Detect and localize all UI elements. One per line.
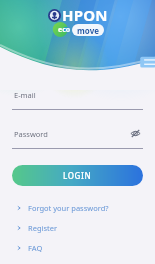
- staticText: E-mail: [14, 90, 36, 100]
- staticText: LOGIN: [63, 170, 92, 181]
- button[interactable]: Show password: [130, 128, 141, 139]
- staticText: FAQ: [28, 243, 43, 253]
- button[interactable]: FAQ: [12, 238, 143, 258]
- staticText: eco: [58, 25, 71, 35]
- button[interactable]: Forgot your password?: [12, 198, 143, 218]
- button[interactable]: LOGIN: [12, 165, 143, 186]
- button[interactable]: E-mail: [12, 88, 143, 110]
- button[interactable]: Register: [12, 218, 143, 238]
- staticText: HPON: [62, 5, 108, 25]
- staticText: move: [77, 25, 99, 36]
- button[interactable]: Password: [12, 127, 143, 149]
- staticText: Forgot your password?: [28, 203, 109, 213]
- staticText: Password: [14, 129, 48, 139]
- staticText: Register: [28, 223, 58, 233]
